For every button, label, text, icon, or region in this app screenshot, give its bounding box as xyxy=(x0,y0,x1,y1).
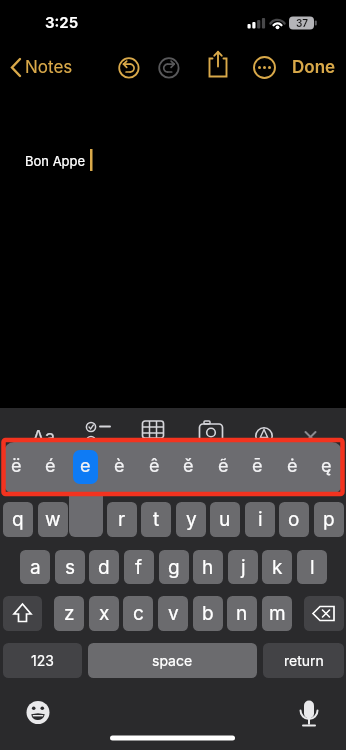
staticText: ê xyxy=(149,455,160,477)
staticText: Notes xyxy=(25,57,73,78)
staticText: ę xyxy=(321,455,332,477)
button[interactable]: x xyxy=(89,596,119,631)
staticText: è xyxy=(114,455,125,477)
staticText: d xyxy=(98,556,110,579)
staticText: n xyxy=(236,602,248,625)
button[interactable]: f xyxy=(124,550,154,584)
staticText: 123 xyxy=(31,652,54,669)
button[interactable]: i xyxy=(245,502,275,537)
staticText: 37 xyxy=(296,17,309,29)
staticText: c xyxy=(133,602,144,625)
staticText: o xyxy=(288,508,300,531)
staticText: z xyxy=(64,602,75,625)
button[interactable]: c xyxy=(123,596,153,631)
button[interactable] xyxy=(24,698,52,726)
staticText: g xyxy=(168,556,180,579)
button[interactable]: j xyxy=(228,550,258,584)
button[interactable] xyxy=(252,55,278,81)
staticText: j xyxy=(241,556,246,579)
button[interactable]: o xyxy=(279,502,309,537)
button[interactable]: Done xyxy=(254,47,346,87)
staticText: Bon Appe xyxy=(25,153,86,169)
staticText: y xyxy=(186,508,197,531)
button[interactable] xyxy=(304,596,344,631)
button[interactable]: s xyxy=(55,550,85,584)
button[interactable] xyxy=(195,412,227,438)
button[interactable]: a xyxy=(20,550,50,584)
button[interactable]: m xyxy=(262,596,292,631)
button[interactable]: v xyxy=(158,596,188,631)
staticText: é xyxy=(45,455,56,477)
staticText: q xyxy=(12,508,24,531)
button[interactable]: t xyxy=(141,502,171,537)
staticText: f xyxy=(135,556,143,579)
button[interactable]: z xyxy=(54,596,84,631)
staticText: i xyxy=(258,508,263,531)
button[interactable] xyxy=(137,412,169,438)
staticText: return xyxy=(284,652,324,669)
staticText: x xyxy=(99,602,110,625)
button[interactable]: w xyxy=(38,502,68,537)
staticText: 3:25 xyxy=(45,13,79,31)
button[interactable]: h xyxy=(193,550,223,584)
button[interactable]: n xyxy=(227,596,257,631)
staticText: t xyxy=(153,508,160,531)
staticText: k xyxy=(272,556,283,579)
staticText: ě xyxy=(183,455,194,477)
button[interactable] xyxy=(116,55,142,81)
button[interactable] xyxy=(206,47,230,79)
staticText: ë xyxy=(11,455,22,477)
button[interactable]: y xyxy=(176,502,206,537)
staticText: m xyxy=(269,602,286,625)
button[interactable]: d xyxy=(89,550,119,584)
button[interactable] xyxy=(73,450,98,484)
staticText: p xyxy=(323,508,335,531)
staticText: h xyxy=(202,556,214,579)
button[interactable] xyxy=(295,698,323,726)
staticText: l xyxy=(310,556,315,579)
staticText: a xyxy=(30,556,41,579)
staticText: Done xyxy=(292,57,336,78)
staticText: v xyxy=(168,602,179,625)
button[interactable]: g xyxy=(159,550,189,584)
button[interactable]: space xyxy=(88,643,257,678)
staticText: space xyxy=(152,652,193,669)
button[interactable]: q xyxy=(3,502,33,537)
button[interactable]: 123 xyxy=(3,643,82,678)
staticText: ė xyxy=(287,455,298,477)
staticText: r xyxy=(118,508,126,531)
button[interactable]: u xyxy=(210,502,240,537)
staticText: s xyxy=(65,556,76,579)
button[interactable]: k xyxy=(262,550,292,584)
button[interactable]: l xyxy=(297,550,327,584)
button[interactable] xyxy=(3,596,42,631)
staticText: b xyxy=(202,602,214,625)
staticText: u xyxy=(219,508,231,531)
button[interactable] xyxy=(82,412,114,438)
button[interactable]: Notes xyxy=(0,47,109,87)
staticText: w xyxy=(45,508,61,531)
staticText: ẽ xyxy=(218,455,229,477)
button[interactable] xyxy=(28,412,60,438)
button[interactable] xyxy=(156,55,182,81)
staticText: e xyxy=(80,455,91,477)
button[interactable] xyxy=(248,412,280,438)
staticText: Aa xyxy=(32,426,56,448)
button[interactable]: b xyxy=(193,596,223,631)
staticText: ē xyxy=(252,455,263,477)
button[interactable] xyxy=(295,412,327,438)
button[interactable]: r xyxy=(107,502,137,537)
button[interactable]: p xyxy=(314,502,344,537)
button[interactable] xyxy=(4,442,342,494)
button[interactable]: return xyxy=(263,643,344,678)
